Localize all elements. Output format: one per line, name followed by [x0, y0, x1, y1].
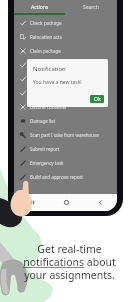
- button[interactable]: Scan part I take from warehouse: [14, 128, 117, 142]
- staticText: Ok: [94, 96, 101, 103]
- staticText: Relocation acts: [30, 34, 62, 40]
- button[interactable]: Back: [83, 194, 117, 211]
- button[interactable]: Recents: [14, 194, 49, 211]
- button[interactable]: Decline container: [14, 100, 117, 114]
- button[interactable]: Relocation acts: [14, 30, 117, 44]
- staticText: Actions: [31, 4, 49, 11]
- button[interactable]: Ok: [90, 95, 104, 103]
- button[interactable]: Damage list: [14, 114, 117, 128]
- staticText: Build and approve report: [30, 174, 83, 180]
- staticText: You have a new task!: [33, 79, 82, 86]
- staticText: Search: [83, 4, 99, 11]
- staticText: Get real-time notifications about your a…: [0, 242, 139, 282]
- staticText: Emergency task: [30, 160, 64, 166]
- staticText: Check package: [30, 20, 62, 26]
- button[interactable]: Claim package: [14, 44, 117, 58]
- button[interactable]: Emergency task: [14, 156, 117, 170]
- button[interactable]: Check container: [14, 72, 117, 86]
- button[interactable]: Submit report: [14, 142, 117, 156]
- staticText: Notification: [33, 65, 66, 73]
- staticText: Decline container: [30, 104, 67, 110]
- staticText: Unload truck: [30, 62, 58, 68]
- button[interactable]: Build and approve report: [14, 170, 117, 184]
- button[interactable]: Count inventory: [14, 86, 117, 100]
- staticText: Submit report: [30, 146, 60, 152]
- staticText: Scan part I take from warehouse: [30, 132, 99, 138]
- button[interactable]: Unload truck: [14, 58, 117, 72]
- staticText: Claim package: [30, 48, 61, 54]
- staticText: Check container: [30, 76, 65, 82]
- button[interactable]: Home: [49, 194, 83, 211]
- button[interactable]: Actions: [14, 2, 65, 13]
- button[interactable]: Check package: [14, 16, 117, 30]
- button[interactable]: Search: [65, 2, 117, 13]
- staticText: Damage list: [30, 118, 56, 124]
